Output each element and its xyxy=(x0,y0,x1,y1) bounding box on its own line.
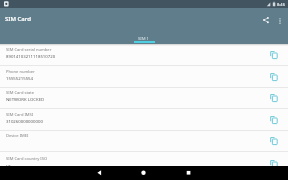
staticText: SIM Card IMSI xyxy=(6,112,34,118)
button[interactable]: SIM Card IMSI xyxy=(0,109,288,131)
button[interactable] xyxy=(268,49,280,61)
staticText: SIM Card state xyxy=(6,90,35,96)
staticText: SIM Card serial number xyxy=(6,47,52,53)
button[interactable]: SIM Card state xyxy=(0,87,288,109)
button[interactable]: SIM 1 xyxy=(114,32,174,44)
staticText: SIM 1 xyxy=(138,36,150,42)
button[interactable] xyxy=(275,16,284,25)
button[interactable]: SIM Card serial number xyxy=(0,44,288,66)
staticText: 8:46 xyxy=(277,2,285,7)
button[interactable] xyxy=(268,114,280,126)
button[interactable] xyxy=(137,166,150,179)
button[interactable] xyxy=(268,92,280,104)
button[interactable] xyxy=(268,135,280,147)
staticText: SIM Card country ISO xyxy=(6,156,48,162)
staticText: Phone number xyxy=(6,69,35,75)
button[interactable] xyxy=(93,166,106,179)
staticText: SIM Card xyxy=(5,15,31,23)
staticText: 310260000000000 xyxy=(6,118,43,124)
staticText: 89014103211118510720 xyxy=(6,53,56,59)
button[interactable]: Phone number xyxy=(0,66,288,88)
button[interactable] xyxy=(182,166,195,179)
staticText: us xyxy=(6,162,11,168)
button[interactable] xyxy=(268,71,280,83)
button[interactable] xyxy=(268,158,280,170)
button[interactable]: SIM Card country ISO xyxy=(0,153,288,175)
button[interactable] xyxy=(261,15,271,25)
staticText: 15555215554 xyxy=(6,75,34,81)
staticText: NETWORK LOCKED xyxy=(6,96,45,102)
staticText: Device IMEI xyxy=(6,133,29,139)
button[interactable]: Device IMEI xyxy=(0,130,288,152)
